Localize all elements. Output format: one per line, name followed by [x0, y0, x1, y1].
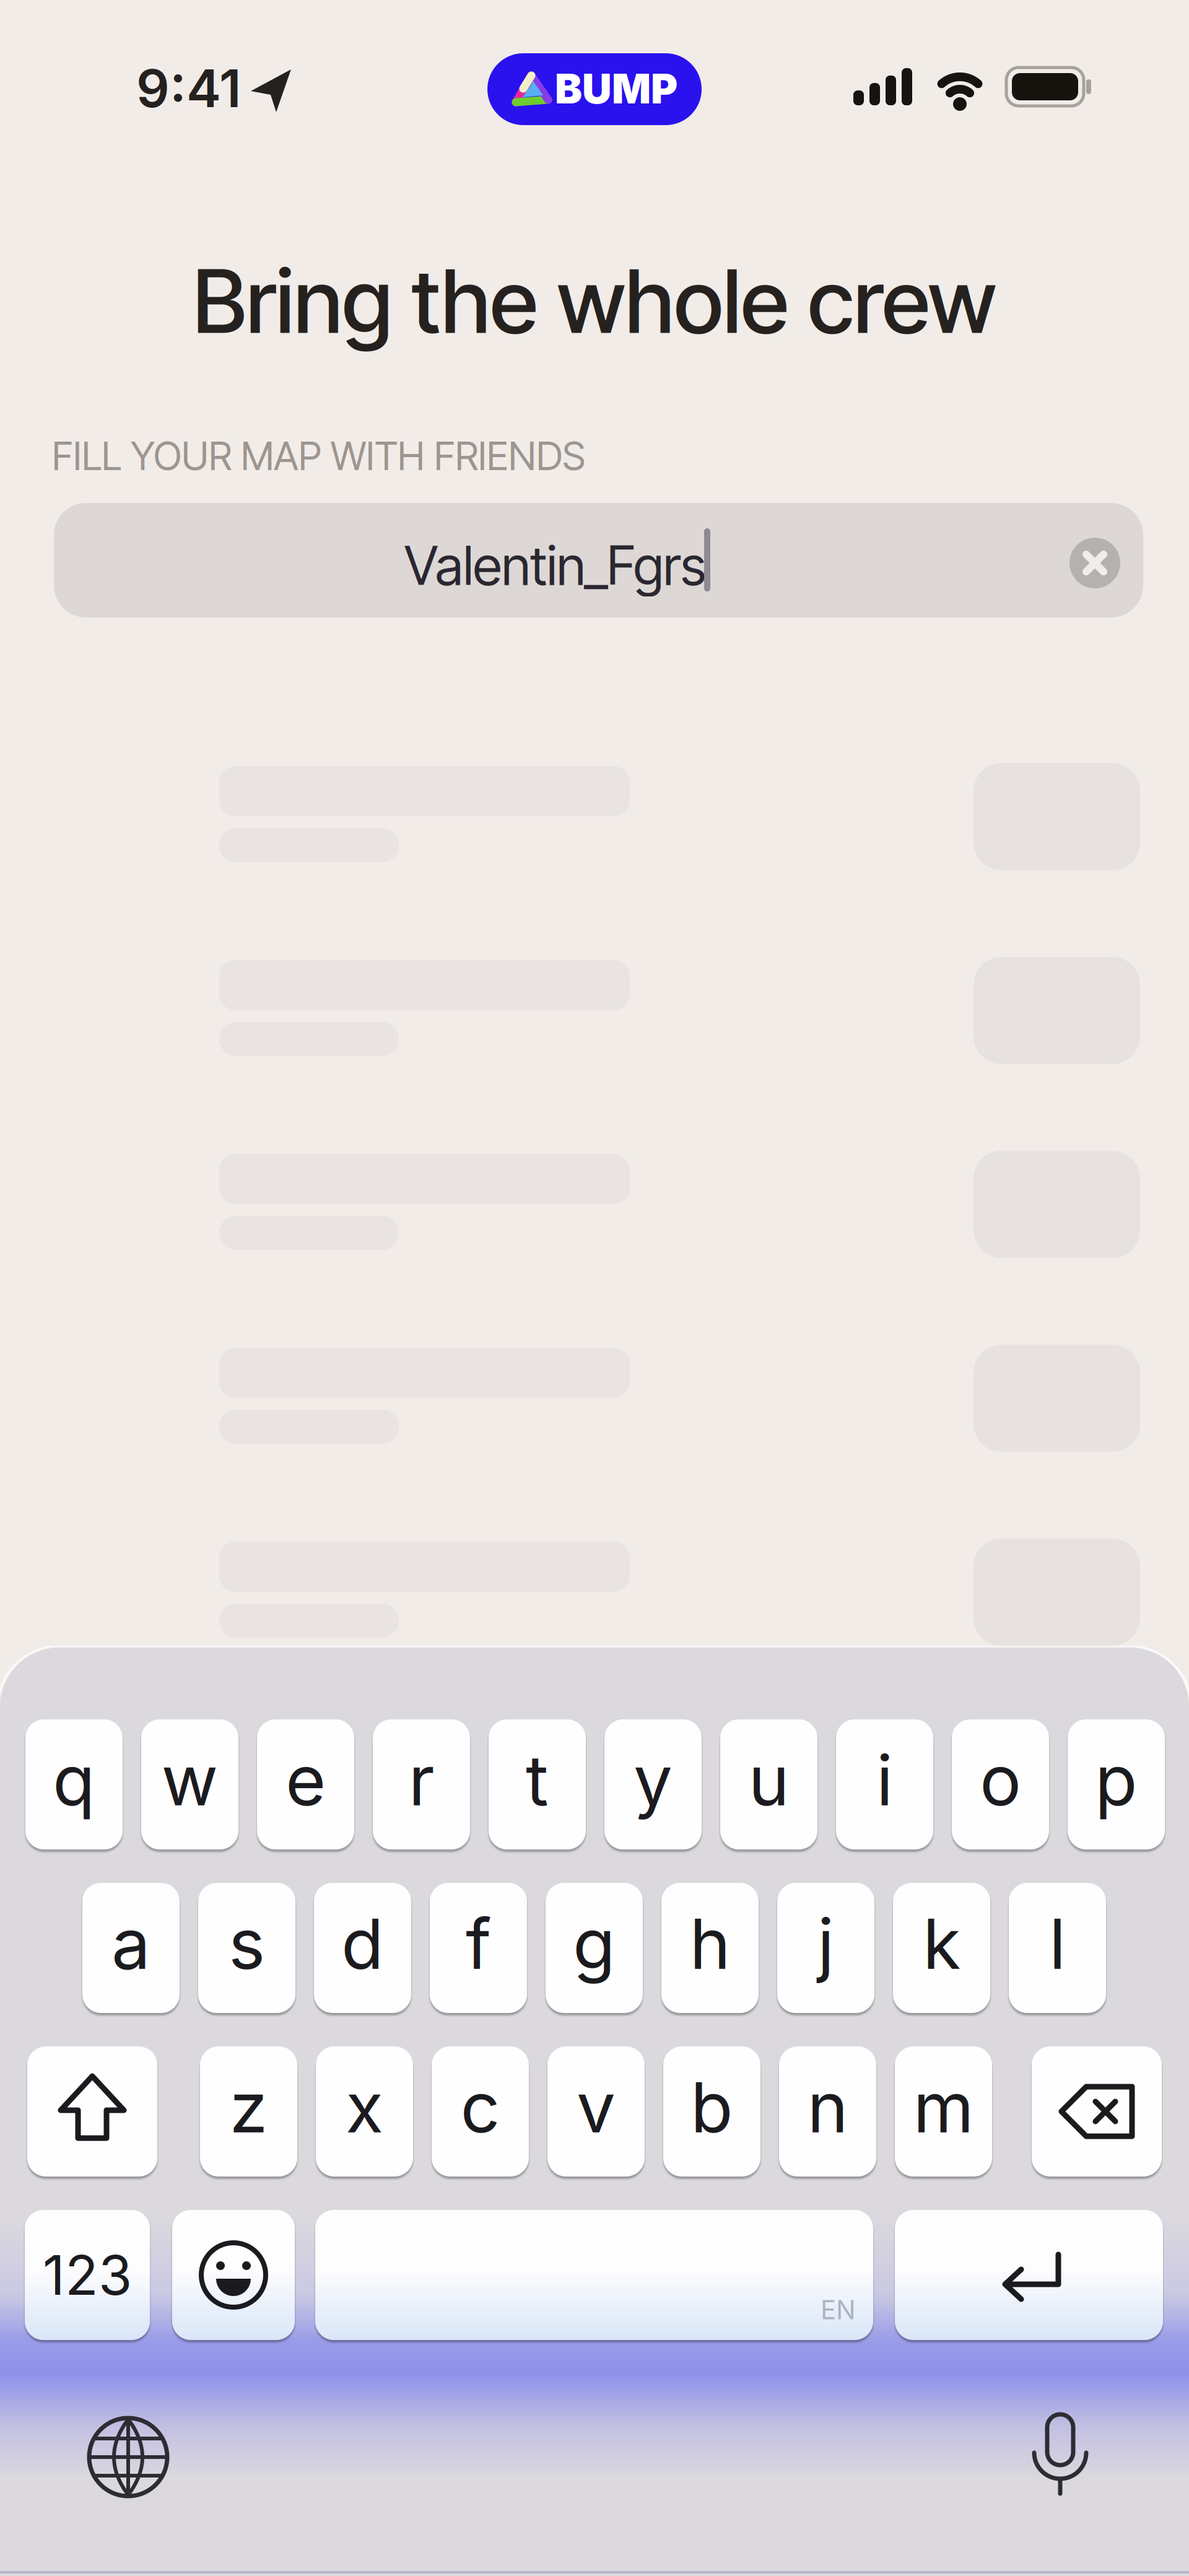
- button[interactable]: j: [777, 1883, 874, 2013]
- staticText: f: [466, 1903, 491, 1984]
- staticText: t: [526, 1739, 549, 1821]
- button[interactable]: z: [200, 2046, 297, 2177]
- button[interactable]: h: [661, 1883, 759, 2013]
- button[interactable]: Emoji: [172, 2210, 295, 2340]
- staticText: c: [460, 2066, 500, 2148]
- button[interactable]: Switch keyboard: [89, 2418, 167, 2496]
- button[interactable]: l: [1009, 1883, 1106, 2013]
- button[interactable]: Numbers: [25, 2210, 150, 2340]
- staticText: j: [817, 1903, 834, 1984]
- button[interactable]: g: [546, 1883, 643, 2013]
- staticText: n: [807, 2066, 848, 2148]
- staticText: FILL YOUR MAP WITH FRIENDS: [52, 432, 585, 480]
- staticText: a: [111, 1903, 150, 1984]
- button[interactable]: u: [720, 1719, 817, 1849]
- button[interactable]: d: [314, 1883, 411, 2013]
- button[interactable]: y: [604, 1719, 702, 1849]
- button[interactable]: m: [895, 2046, 992, 2177]
- staticText: x: [346, 2066, 383, 2148]
- button[interactable]: b: [663, 2046, 760, 2177]
- staticText: k: [923, 1903, 960, 1984]
- button[interactable]: v: [547, 2046, 645, 2177]
- button[interactable]: e: [257, 1719, 354, 1849]
- button[interactable]: o: [952, 1719, 1049, 1849]
- button[interactable]: c: [432, 2046, 529, 2177]
- button[interactable]: n: [779, 2046, 876, 2177]
- button[interactable]: r: [373, 1719, 470, 1849]
- button[interactable]: Username text field: [54, 503, 1143, 618]
- staticText: y: [634, 1739, 673, 1821]
- staticText: s: [229, 1903, 265, 1984]
- staticText: i: [876, 1739, 893, 1821]
- button[interactable]: w: [141, 1719, 238, 1849]
- staticText: 123: [43, 2243, 132, 2307]
- staticText: Valentin_Fgrs: [404, 533, 706, 598]
- button[interactable]: p: [1068, 1719, 1165, 1849]
- staticText: r: [408, 1739, 434, 1821]
- staticText: o: [980, 1739, 1021, 1821]
- staticText: l: [1049, 1903, 1066, 1984]
- button[interactable]: Dictation: [1028, 2414, 1092, 2494]
- button[interactable]: Shift: [27, 2046, 157, 2177]
- staticText: d: [341, 1903, 384, 1984]
- staticText: z: [229, 2066, 268, 2148]
- staticText: u: [748, 1739, 789, 1821]
- staticText: v: [577, 2066, 616, 2148]
- staticText: Bring the whole crew: [193, 248, 996, 354]
- staticText: q: [53, 1739, 95, 1821]
- button[interactable]: q: [25, 1719, 123, 1849]
- button[interactable]: i: [836, 1719, 933, 1849]
- button[interactable]: k: [893, 1883, 990, 2013]
- staticText: m: [913, 2066, 974, 2148]
- button[interactable]: s: [198, 1883, 295, 2013]
- button[interactable]: x: [316, 2046, 413, 2177]
- staticText: 9:41: [136, 58, 242, 119]
- staticText: p: [1095, 1739, 1138, 1821]
- button[interactable]: Clear text: [1069, 538, 1120, 588]
- staticText: w: [161, 1739, 218, 1821]
- staticText: b: [690, 2066, 733, 2148]
- staticText: BUMP: [555, 64, 677, 113]
- button[interactable]: f: [430, 1883, 527, 2013]
- button[interactable]: Return: [895, 2210, 1163, 2340]
- staticText: EN: [821, 2294, 856, 2325]
- button[interactable]: Delete: [1032, 2046, 1162, 2177]
- staticText: h: [690, 1903, 730, 1984]
- staticText: g: [573, 1903, 616, 1984]
- button[interactable]: a: [82, 1883, 180, 2013]
- button[interactable]: Space: [315, 2210, 873, 2340]
- staticText: e: [285, 1739, 326, 1821]
- button[interactable]: t: [489, 1719, 586, 1849]
